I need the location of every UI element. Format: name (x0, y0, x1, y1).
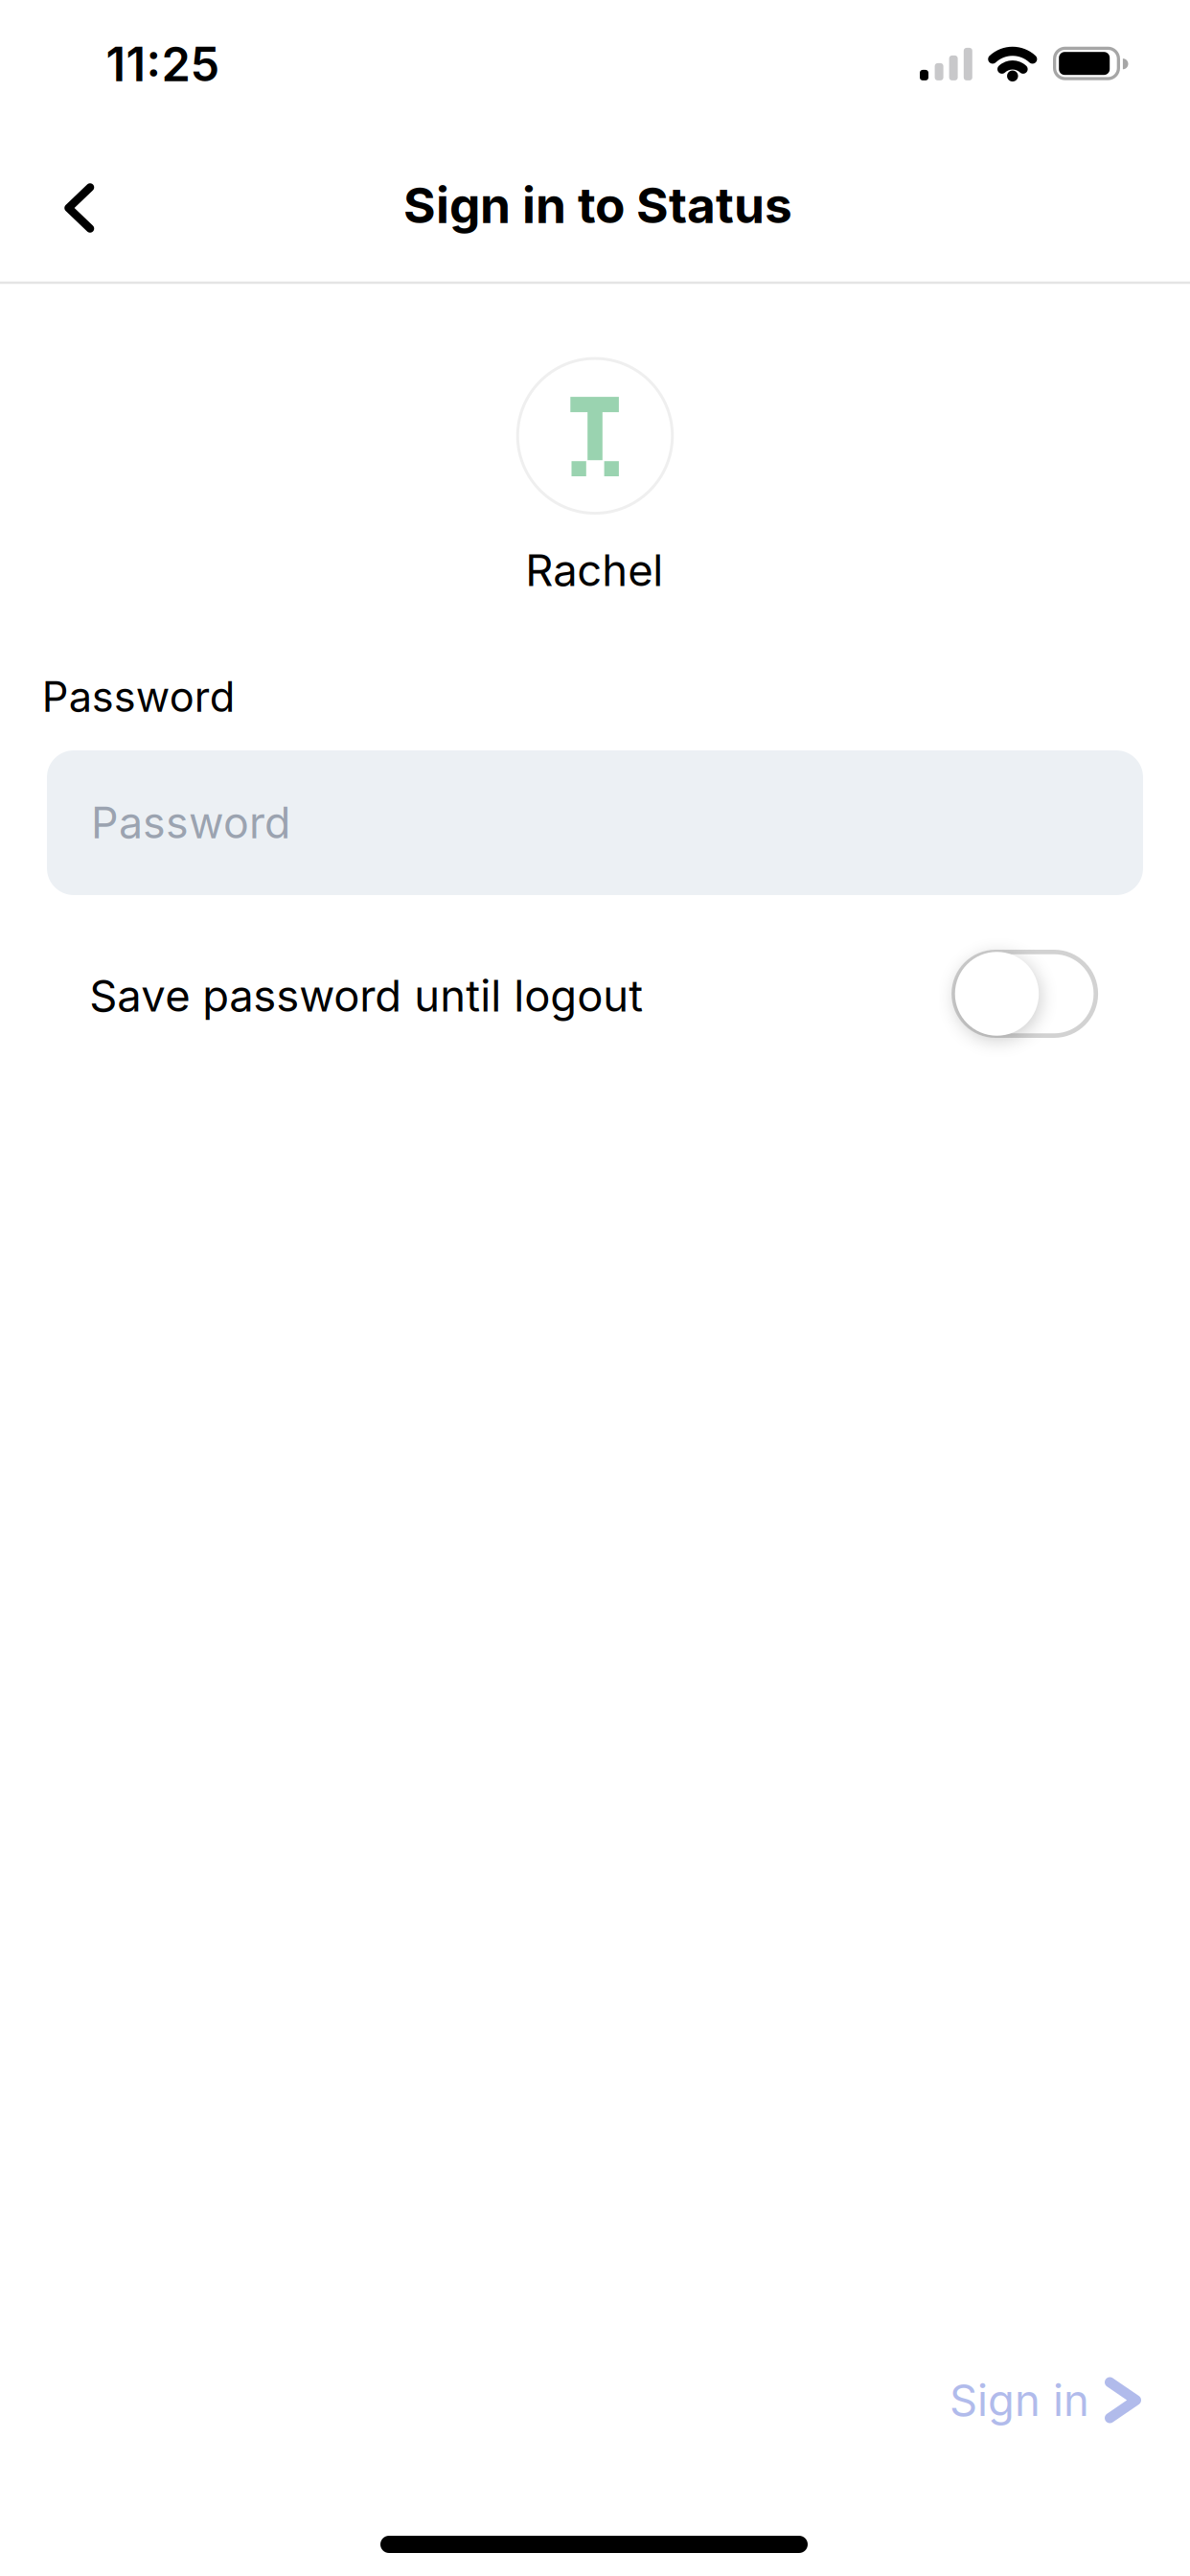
button[interactable]: Password (47, 750, 1143, 895)
button[interactable]: Sign in (950, 2357, 1141, 2443)
button[interactable]: Save password until logout (952, 950, 1098, 1038)
staticText: Rachel (525, 544, 663, 597)
button[interactable]: Back (34, 163, 123, 252)
staticText: Sign in (950, 2374, 1089, 2426)
staticText: Password (91, 797, 290, 849)
staticText: Save password until logout (89, 969, 643, 1022)
staticText: Password (42, 672, 235, 722)
staticText: Sign in to Status (403, 175, 792, 235)
staticText: 11:25 (106, 36, 220, 92)
